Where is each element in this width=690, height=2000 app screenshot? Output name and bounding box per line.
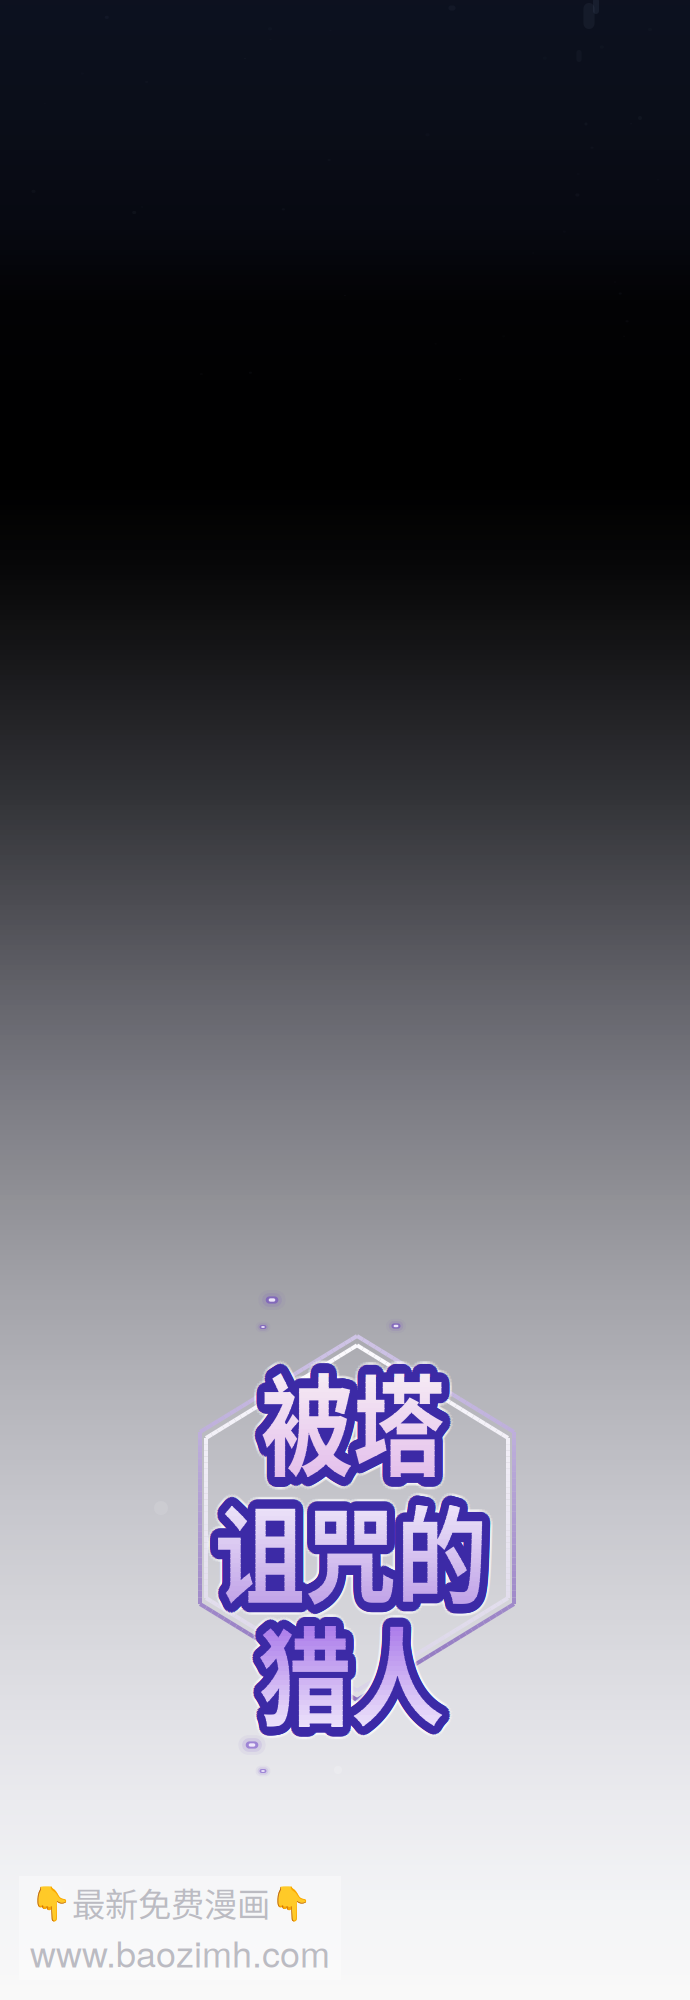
staticText: 诅咒的 [214, 1483, 487, 1615]
staticText: 诅咒的 [214, 1483, 487, 1615]
staticText: 猎人 [262, 1597, 448, 1732]
staticText: 诅咒的 [216, 1491, 489, 1622]
staticText: 诅咒的 [213, 1475, 486, 1607]
staticText: 诅咒的 [224, 1489, 497, 1620]
staticText: 猎人 [258, 1603, 444, 1738]
staticText: 被塔 [261, 1352, 445, 1486]
staticText: 诅咒的 [214, 1483, 487, 1615]
staticText: 诅咒的 [210, 1482, 483, 1614]
staticText: 被塔 [261, 1352, 445, 1486]
staticText: 猎人 [258, 1603, 444, 1738]
staticText: 被塔 [263, 1356, 447, 1489]
staticText: 被塔 [268, 1345, 452, 1478]
staticText: 被塔 [268, 1357, 452, 1490]
staticText: 👇最新免费漫画👇 [30, 1878, 312, 1926]
staticText: 诅咒的 [207, 1480, 480, 1612]
staticText: 诅咒的 [209, 1492, 482, 1624]
staticText: 诅咒的 [214, 1483, 487, 1615]
staticText: 猎人 [254, 1604, 440, 1739]
staticText: 被塔 [261, 1352, 445, 1486]
staticText: 诅咒的 [214, 1483, 487, 1615]
staticText: 被塔 [263, 1349, 447, 1482]
staticText: 被塔 [261, 1352, 445, 1486]
staticText: 被塔 [271, 1350, 455, 1483]
staticText: 猎人 [258, 1603, 444, 1738]
staticText: 猎人 [260, 1611, 446, 1746]
staticText: 诅咒的 [214, 1483, 487, 1615]
staticText: 被塔 [261, 1363, 445, 1496]
staticText: 诅咒的 [217, 1480, 490, 1611]
staticText: 被塔 [261, 1352, 445, 1486]
staticText: 诅咒的 [209, 1489, 482, 1620]
staticText: 被塔 [261, 1352, 445, 1486]
staticText: 被塔 [261, 1352, 445, 1486]
staticText: 诅咒的 [213, 1491, 486, 1622]
staticText: 猎人 [267, 1598, 453, 1733]
staticText: 猎人 [258, 1593, 444, 1728]
staticText: 猎人 [262, 1601, 448, 1736]
staticText: 被塔 [254, 1357, 438, 1490]
staticText: 诅咒的 [219, 1477, 492, 1608]
staticText: 被塔 [253, 1352, 437, 1486]
staticText: 猎人 [258, 1603, 444, 1738]
staticText: 被塔 [267, 1358, 451, 1491]
staticText: 猎人 [258, 1603, 444, 1738]
staticText: 诅咒的 [218, 1476, 491, 1607]
staticText: 被塔 [255, 1358, 439, 1491]
staticText: 诅咒的 [215, 1479, 488, 1610]
staticText: 猎人 [258, 1603, 444, 1738]
staticText: 猎人 [249, 1609, 435, 1744]
staticText: 被塔 [261, 1352, 445, 1486]
staticText: 猎人 [262, 1604, 448, 1739]
staticText: 猎人 [258, 1603, 444, 1738]
staticText: 诅咒的 [204, 1481, 477, 1612]
staticText: 猎人 [258, 1603, 444, 1738]
staticText: 猎人 [265, 1611, 451, 1746]
staticText: 被塔 [268, 1360, 452, 1493]
staticText: 猎人 [257, 1599, 443, 1734]
staticText: 猎人 [258, 1603, 444, 1738]
staticText: 猎人 [250, 1602, 436, 1737]
staticText: 猎人 [248, 1601, 434, 1736]
staticText: 猎人 [268, 1601, 454, 1736]
staticText: 猎人 [261, 1611, 447, 1746]
staticText: 猎人 [251, 1600, 437, 1735]
staticText: 猎人 [268, 1603, 454, 1738]
staticText: www.baozimh.com [30, 1926, 330, 1978]
staticText: 被塔 [256, 1343, 440, 1476]
staticText: 猎人 [258, 1603, 444, 1738]
staticText: 被塔 [252, 1347, 436, 1480]
staticText: 猎人 [260, 1596, 446, 1731]
staticText: 猎人 [265, 1606, 451, 1742]
staticText: 诅咒的 [225, 1483, 498, 1615]
staticText: 被塔 [270, 1347, 454, 1480]
staticText: 诅咒的 [206, 1483, 479, 1615]
staticText: 猎人 [267, 1609, 453, 1744]
staticText: 诅咒的 [214, 1483, 487, 1615]
staticText: 诅咒的 [220, 1478, 493, 1609]
staticText: 诅咒的 [217, 1487, 490, 1618]
staticText: 被塔 [270, 1358, 454, 1491]
staticText: 诅咒的 [214, 1483, 487, 1615]
staticText: 被塔 [261, 1342, 445, 1475]
staticText: 诅咒的 [214, 1483, 487, 1615]
staticText: 猎人 [268, 1606, 454, 1741]
staticText: 诅咒的 [222, 1491, 495, 1622]
staticText: 被塔 [268, 1348, 452, 1481]
button[interactable]: 👇最新免费漫画👇 [19, 1876, 341, 1980]
staticText: 诅咒的 [219, 1482, 492, 1614]
staticText: 诅咒的 [211, 1476, 484, 1607]
staticText: 被塔 [267, 1347, 451, 1480]
staticText: 猎人 [266, 1602, 452, 1737]
staticText: 被塔 [261, 1352, 445, 1486]
staticText: 被塔 [265, 1351, 449, 1485]
staticText: 诅咒的 [214, 1483, 487, 1615]
staticText: 被塔 [259, 1356, 443, 1489]
staticText: 猎人 [258, 1603, 444, 1738]
staticText: 猎人 [258, 1603, 444, 1738]
staticText: 猎人 [255, 1593, 441, 1728]
staticText: 被塔 [261, 1352, 445, 1486]
staticText: 诅咒的 [222, 1482, 495, 1613]
staticText: 诅咒的 [222, 1483, 495, 1615]
staticText: 猎人 [254, 1597, 440, 1732]
